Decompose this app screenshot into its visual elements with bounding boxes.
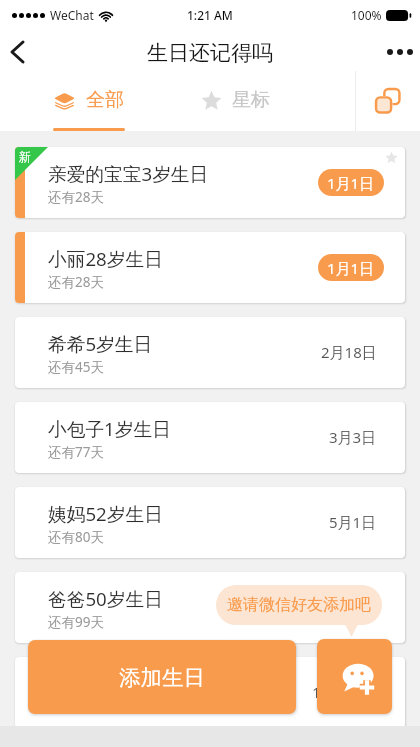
button[interactable]: 亲爱的宝宝3岁生日 [15,147,405,218]
button[interactable]: More options [372,30,420,71]
button[interactable]: Back [0,30,40,71]
staticText: 新 [19,149,31,164]
staticText: 11月29日 [312,682,377,702]
staticText: 小包子1岁生日 [48,416,171,442]
staticText: 希希5岁生日 [48,331,153,357]
staticText: 生日还记得吗 [147,40,273,66]
button[interactable]: 姨妈52岁生日 [15,487,405,558]
button[interactable]: 全部 [0,71,177,131]
staticText: 小丽28岁生日 [48,246,163,272]
button[interactable]: 星标 [177,71,355,131]
button[interactable]: 添加生日 [28,640,296,714]
staticText: 还有99天 [48,613,104,631]
button[interactable]: 小丽28岁生日 [15,232,405,303]
staticText: 邀请微信好友添加吧 [227,595,371,615]
staticText: 星标 [232,88,270,112]
staticText: 5月1日 [329,512,377,532]
button[interactable]: Copy [356,71,420,131]
staticText: 1:21 AM [187,7,233,23]
staticText: 爸爸50岁生日 [48,586,163,612]
staticText: 2月18日 [321,342,377,362]
staticText: 还有80天 [48,528,104,546]
staticText: WeChat [50,7,94,23]
button[interactable]: 爸爸50岁生日 [15,572,405,643]
staticText: 100% [351,7,382,23]
button[interactable]: 小包子1岁生日 [15,402,405,473]
button[interactable]: Invite WeChat friends [317,639,392,714]
staticText: 姨妈52岁生日 [48,501,163,527]
staticText: 3月3日 [329,427,377,447]
staticText: 还有77天 [48,443,104,461]
staticText: 1月1日 [327,258,375,278]
staticText: 亲爱的宝宝3岁生日 [48,161,209,187]
button[interactable]: 希希5岁生日 [15,317,405,388]
staticText: 还有28天 [48,273,104,291]
button[interactable]: 11月29日 [15,657,405,728]
staticText: 全部 [86,88,124,112]
staticText: 还有28天 [48,188,104,206]
staticText: 添加生日 [119,664,205,691]
staticText: 1月1日 [327,173,375,193]
staticText: 还有45天 [48,358,104,376]
